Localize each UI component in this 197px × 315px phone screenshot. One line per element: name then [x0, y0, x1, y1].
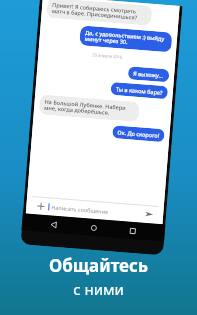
staticText: Привет! Я собираюсь смотреть матч в баре… [51, 1, 147, 22]
button[interactable]: Я выхожу... [128, 66, 170, 82]
button[interactable]: Привет! Я собираюсь смотреть матч в баре… [46, 0, 152, 26]
staticText: с ними [73, 279, 124, 299]
staticText: Я выхожу... [133, 70, 164, 79]
button[interactable]: Attach [34, 199, 47, 212]
button[interactable]: Да, с удовольствием :) выйду минут через… [79, 25, 172, 52]
staticText: На Большой Лубянке. Набери мне, когда до… [44, 98, 135, 119]
button[interactable]: Back [46, 217, 62, 232]
staticText: Общайтесь [49, 254, 148, 277]
button[interactable]: Recent apps [125, 223, 140, 239]
button[interactable]: На Большой Лубянке. Набери мне, когда до… [39, 94, 140, 122]
button[interactable]: Ок. До скорого! [112, 125, 165, 142]
staticText: Написать сообщение [51, 204, 143, 218]
button[interactable]: Ты в каком баре? [110, 82, 168, 99]
staticText: 25 апреля 2016 [92, 52, 123, 60]
staticText: Ты в каком баре? [116, 85, 163, 96]
button[interactable]: Send [143, 208, 156, 221]
staticText: Да, с удовольствием :) выйду минут через… [84, 29, 167, 49]
staticText: Ок. До скорого! [117, 128, 160, 139]
button[interactable]: Home [86, 220, 101, 235]
